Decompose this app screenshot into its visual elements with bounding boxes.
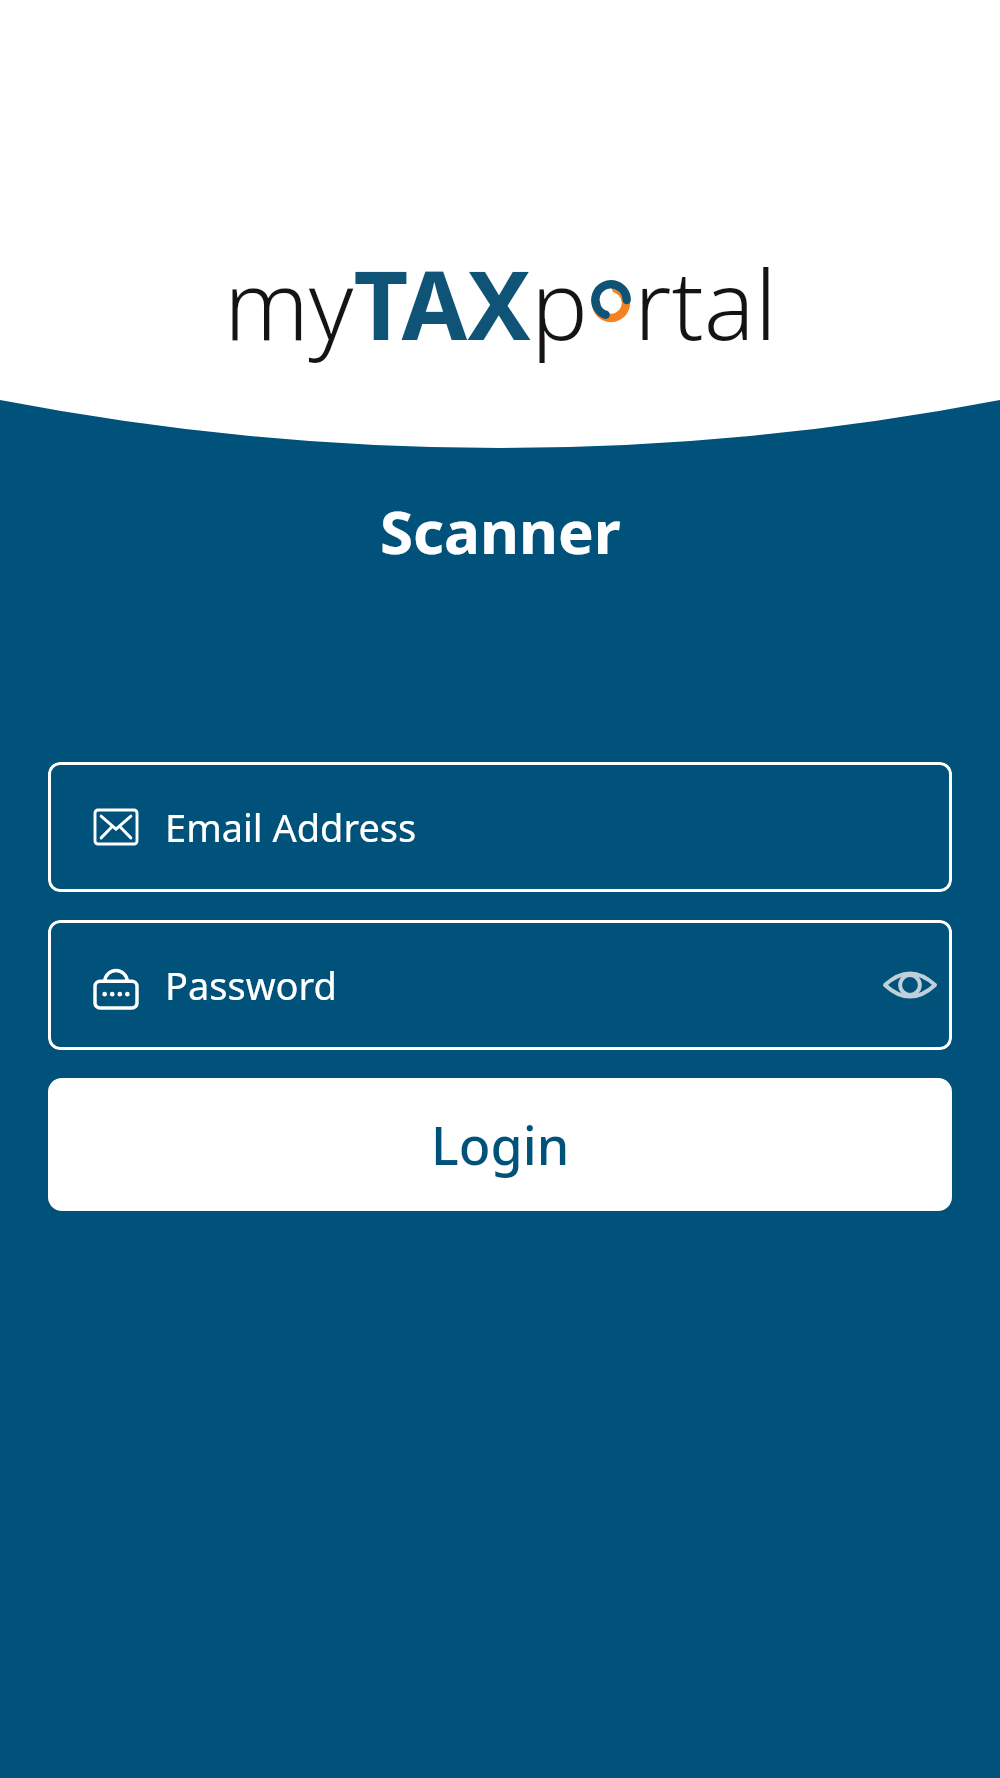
button[interactable]: Show password <box>862 937 958 1033</box>
staticText: Login <box>431 1109 570 1180</box>
staticText: rtal <box>634 238 777 367</box>
staticText: Password <box>165 959 337 1011</box>
staticText: Email Address <box>165 801 417 853</box>
button[interactable]: Login <box>48 1078 952 1211</box>
staticText: Scanner <box>380 490 621 572</box>
button[interactable]: Password <box>48 920 952 1050</box>
button[interactable]: Email Address <box>48 762 952 892</box>
staticText: myTAXp <box>224 238 588 367</box>
